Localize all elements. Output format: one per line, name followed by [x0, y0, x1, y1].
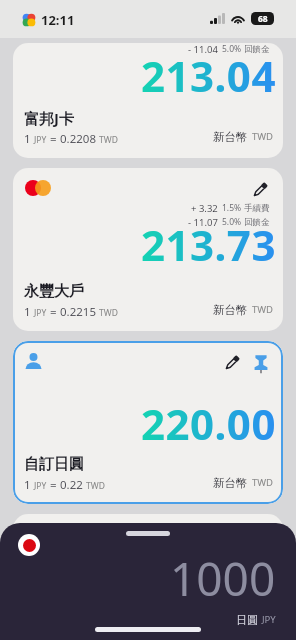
button[interactable]: - 11.04 [13, 43, 283, 158]
staticText: 0.2208 [60, 131, 96, 147]
staticText: JPY [34, 134, 47, 146]
staticText: 213.73 [141, 216, 276, 273]
staticText: JPY [262, 613, 276, 626]
staticText: TWD [86, 480, 105, 492]
staticText: 1 [24, 304, 31, 320]
staticText: 5.0% [222, 43, 242, 55]
staticText: JPY [34, 480, 47, 492]
staticText: JPY [34, 307, 47, 319]
staticText: 1 [24, 131, 31, 147]
staticText: 新台幣 [213, 130, 248, 144]
staticText: 1000 [170, 547, 276, 610]
button[interactable]: Drag handle [126, 531, 170, 536]
staticText: TWD [99, 134, 118, 146]
staticText: 12:11 [41, 11, 75, 29]
staticText: 68 [258, 13, 268, 25]
staticText: TWD [252, 130, 274, 143]
staticText: 5.0% [222, 216, 242, 228]
staticText: 回饋金 [244, 44, 270, 55]
staticText: 1.5% [222, 202, 242, 214]
staticText: 富邦J卡 [24, 108, 74, 128]
staticText: TWD [86, 616, 105, 628]
staticText: - 11.07 [188, 216, 218, 229]
staticText: 200.00 [141, 534, 276, 591]
button[interactable]: Japan flag [18, 534, 40, 556]
staticText: 日圓 [236, 613, 258, 627]
staticText: 自訂日圓 [24, 455, 84, 474]
button[interactable]: Edit [13, 341, 283, 504]
button[interactable]: Pin [251, 354, 270, 373]
staticText: TWD [252, 303, 274, 316]
staticText: 手續費 [244, 203, 270, 214]
button[interactable]: Edit [222, 353, 242, 373]
staticText: = [50, 477, 57, 493]
staticText: + 3.32 [191, 202, 218, 215]
staticText: TWD [252, 612, 274, 625]
staticText: 213.04 [141, 47, 276, 104]
staticText: 1 [24, 477, 31, 493]
staticText: = [50, 304, 57, 320]
button[interactable]: Edit [250, 180, 270, 200]
staticText: = [50, 131, 57, 147]
staticText: - 11.04 [188, 43, 218, 56]
button[interactable]: 200.00 [13, 514, 283, 640]
staticText: 新台幣 [213, 303, 248, 317]
staticText: 0.2215 [60, 304, 96, 320]
button[interactable]: Edit [13, 168, 283, 331]
staticText: 新台幣 [213, 476, 248, 490]
staticText: 回饋金 [244, 217, 270, 228]
staticText: TWD [252, 476, 274, 489]
staticText: 新台幣 [213, 612, 248, 626]
staticText: 220.00 [141, 395, 276, 452]
staticText: 永豐大戶 [24, 282, 84, 301]
staticText: 0.22 [60, 477, 83, 493]
staticText: TWD [99, 307, 118, 319]
